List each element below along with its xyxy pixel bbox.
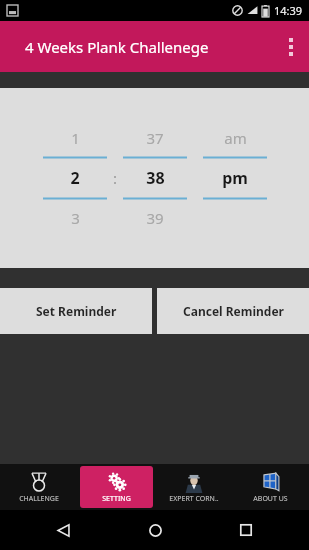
button[interactable]: 37	[121, 120, 189, 156]
button[interactable]: EXPERT CORN..	[157, 466, 230, 508]
button[interactable]: Set Reminder	[0, 288, 152, 334]
button[interactable]: ABOUT US	[234, 466, 307, 508]
staticText: SETTING	[102, 494, 131, 504]
button[interactable]: More options	[273, 21, 309, 72]
button[interactable]: Cancel Reminder	[157, 288, 309, 334]
button[interactable]: 4 Weeks Plank Challenege	[0, 21, 309, 72]
staticText: Cancel Reminder	[183, 303, 284, 319]
staticText: CHALLENGE	[19, 494, 59, 504]
button[interactable]: SETTING	[80, 466, 153, 508]
staticText: 39	[146, 208, 164, 228]
staticText: 14:39	[274, 3, 303, 18]
button[interactable]: Back	[50, 517, 76, 543]
staticText: ABOUT US	[253, 494, 288, 504]
staticText: :	[113, 168, 118, 188]
staticText: 3	[71, 208, 80, 228]
staticText: 2	[70, 167, 80, 189]
staticText: Set Reminder	[36, 303, 117, 319]
staticText: pm	[222, 167, 248, 189]
staticText: am	[224, 128, 247, 148]
staticText: EXPERT CORN..	[169, 494, 219, 504]
button[interactable]: CHALLENGE	[2, 466, 76, 508]
button[interactable]: Home	[142, 517, 168, 543]
button[interactable]: 1	[41, 120, 109, 156]
button[interactable]: pm	[201, 159, 269, 197]
button[interactable]: am	[201, 120, 269, 156]
staticText: 1	[71, 128, 80, 148]
staticText: 4 Weeks Plank Challenege	[25, 37, 209, 57]
button[interactable]: Recents	[233, 517, 259, 543]
button[interactable]: 38	[121, 159, 189, 197]
button[interactable]: 39	[121, 200, 189, 236]
button[interactable]: 2	[41, 159, 109, 197]
staticText: 37	[146, 128, 164, 148]
button[interactable]: 3	[41, 200, 109, 236]
staticText: 38	[146, 167, 165, 189]
